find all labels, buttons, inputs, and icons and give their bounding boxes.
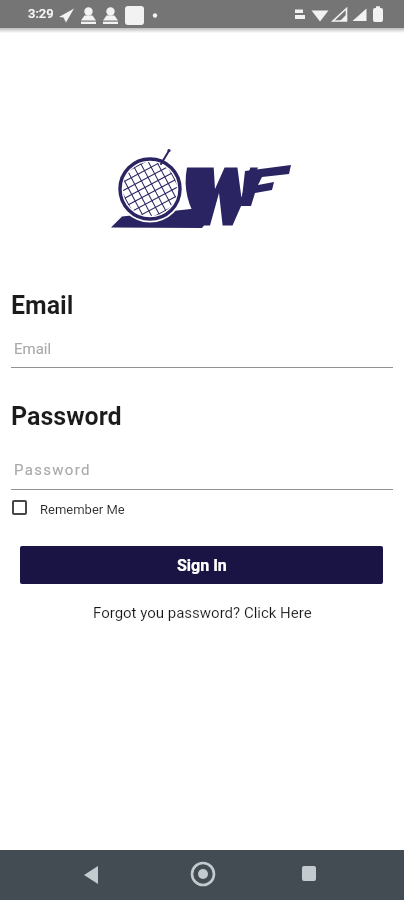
- staticText: Email: [11, 291, 74, 320]
- button[interactable]: [190, 861, 216, 887]
- staticText: Sign In: [177, 556, 227, 575]
- button[interactable]: Forgot you password? Click Here: [93, 604, 312, 622]
- button[interactable]: [75, 865, 105, 887]
- staticText: Remember Me: [40, 502, 125, 517]
- button[interactable]: [300, 865, 318, 883]
- staticText: 3:29: [28, 6, 54, 21]
- button[interactable]: Remember Me: [12, 500, 125, 515]
- staticText: Password: [11, 402, 122, 431]
- button[interactable]: Sign In: [20, 546, 383, 584]
- staticText: Password: [14, 461, 91, 479]
- staticText: Email: [14, 340, 52, 358]
